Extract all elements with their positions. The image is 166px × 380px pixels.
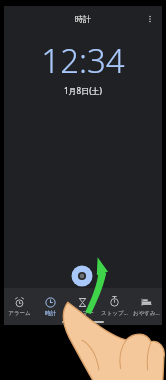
staticText: おやすみ… <box>133 309 160 317</box>
button[interactable]: タイマー <box>66 288 98 325</box>
staticText: 1月8日(土) <box>64 85 102 96</box>
staticText: 時計 <box>45 310 56 317</box>
staticText: タイマー <box>71 310 94 317</box>
button[interactable]: Add alarm <box>68 262 96 290</box>
staticText: アラーム <box>8 310 31 317</box>
button[interactable]: アラーム <box>4 288 35 325</box>
button[interactable]: ストップ… <box>98 288 130 325</box>
staticText: 12:34 <box>41 38 125 83</box>
staticText: 時計 <box>75 14 91 24</box>
button[interactable]: More options <box>141 10 159 28</box>
button[interactable]: おやすみ… <box>130 288 162 325</box>
button[interactable]: 時計 <box>35 288 66 325</box>
staticText: ストップ… <box>101 309 128 317</box>
